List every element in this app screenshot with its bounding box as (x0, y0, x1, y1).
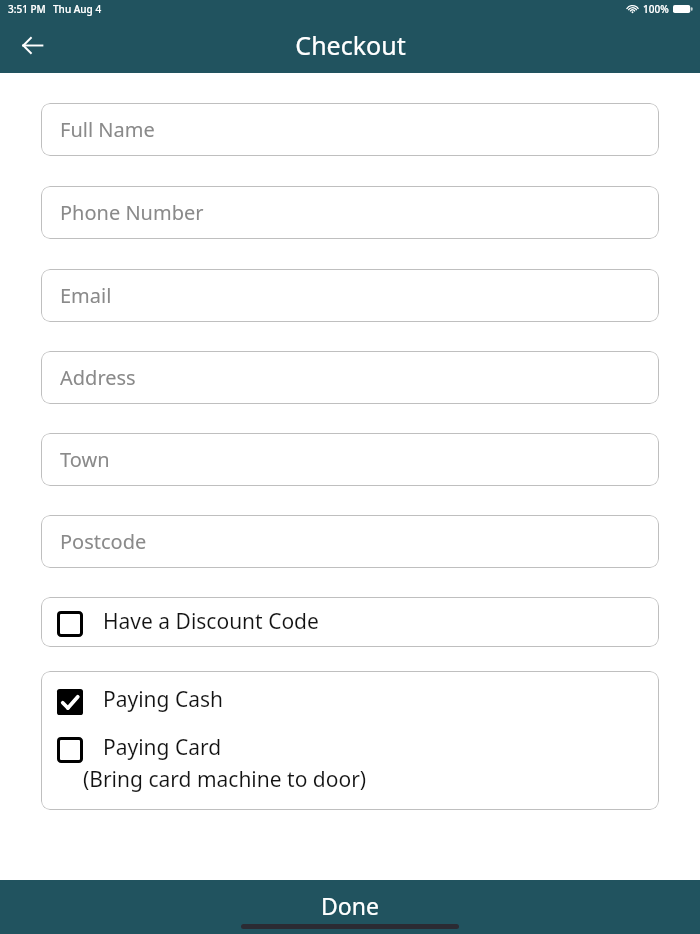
staticText: Town (60, 446, 110, 473)
staticText: 3:51 PM (8, 2, 46, 16)
button[interactable]: Have a Discount Code (41, 597, 659, 647)
staticText: Paying Cash (103, 685, 224, 714)
button[interactable]: Address (41, 351, 659, 404)
button[interactable]: Paying Cash (41, 675, 659, 725)
staticText: Done (321, 890, 379, 921)
staticText: Full Name (60, 116, 155, 143)
staticText: (Bring card machine to door) (83, 765, 367, 794)
staticText: Postcode (60, 528, 147, 555)
staticText: Phone Number (60, 199, 204, 226)
staticText: Checkout (295, 28, 406, 62)
button[interactable]: Email (41, 269, 659, 322)
staticText: Have a Discount Code (103, 607, 319, 636)
staticText: Thu Aug 4 (53, 2, 102, 16)
button[interactable]: Full Name (41, 103, 659, 156)
button[interactable]: Back (12, 25, 52, 65)
button[interactable]: Paying Card (41, 725, 659, 806)
button[interactable]: Phone Number (41, 186, 659, 239)
staticText: Email (60, 282, 112, 309)
button[interactable]: Postcode (41, 515, 659, 568)
staticText: 100% (643, 2, 669, 16)
staticText: Paying Card (103, 733, 222, 762)
staticText: Address (60, 364, 136, 391)
button[interactable]: Town (41, 433, 659, 486)
button[interactable]: Done (0, 880, 700, 934)
